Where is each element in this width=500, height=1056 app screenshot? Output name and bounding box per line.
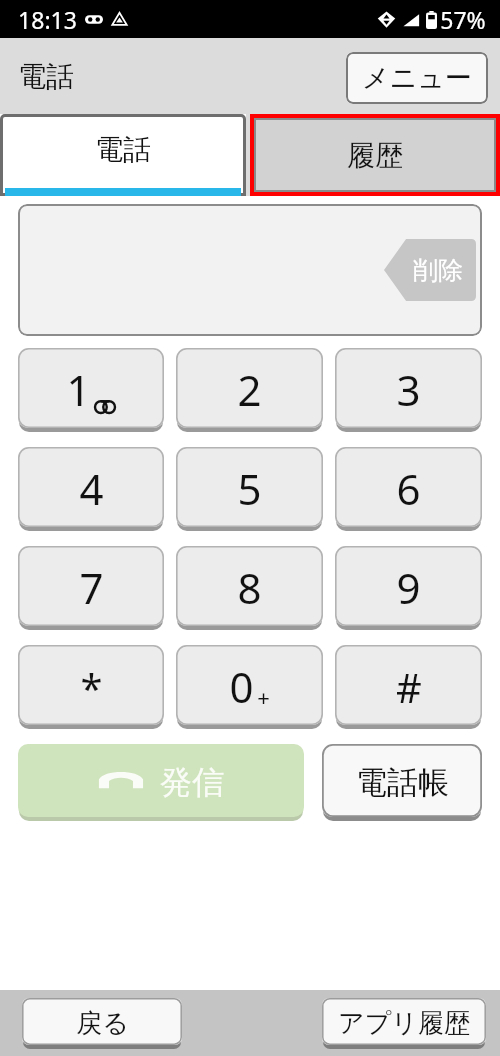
button[interactable]: 4 xyxy=(18,447,164,530)
button[interactable]: 電話 xyxy=(0,114,246,196)
button[interactable]: 1 xyxy=(18,348,164,431)
button[interactable]: 電話帳 xyxy=(322,744,482,820)
button[interactable]: # xyxy=(335,645,482,728)
staticText: 6 xyxy=(396,460,421,517)
staticText: 5 xyxy=(237,460,262,517)
button[interactable]: 8 xyxy=(176,546,323,629)
button[interactable]: 履歴 xyxy=(254,118,496,192)
button[interactable]: * xyxy=(18,645,164,728)
staticText: メニュー xyxy=(362,61,472,95)
button[interactable]: アプリ履歴 xyxy=(322,998,486,1048)
staticText: + xyxy=(257,682,270,712)
staticText: * xyxy=(80,660,103,714)
button[interactable]: 削除 xyxy=(384,239,476,301)
button[interactable]: 2 xyxy=(176,348,323,431)
staticText: 2 xyxy=(237,361,262,418)
button[interactable]: 7 xyxy=(18,546,164,629)
staticText: 電話帳 xyxy=(356,763,449,802)
button[interactable]: 戻る xyxy=(22,998,182,1048)
staticText: 削除 xyxy=(413,255,463,286)
staticText: 発信 xyxy=(160,762,224,802)
staticText: 1 xyxy=(66,361,91,418)
staticText: 18:13 xyxy=(18,4,77,35)
staticText: 3 xyxy=(396,361,421,418)
staticText: 戻る xyxy=(76,1007,129,1040)
button[interactable]: 9 xyxy=(335,546,482,629)
staticText: 0 xyxy=(229,658,254,715)
button[interactable]: 発信 xyxy=(18,744,304,820)
staticText: 57% xyxy=(440,4,486,35)
staticText: アプリ履歴 xyxy=(338,1007,470,1040)
staticText: 電話 xyxy=(18,59,74,94)
button[interactable]: 3 xyxy=(335,348,482,431)
staticText: 7 xyxy=(79,559,104,616)
staticText: 8 xyxy=(237,559,262,616)
button[interactable]: 0 xyxy=(176,645,323,728)
staticText: 電話 xyxy=(95,132,151,167)
button[interactable]: メニュー xyxy=(346,52,488,104)
staticText: 9 xyxy=(396,559,421,616)
button[interactable]: 5 xyxy=(176,447,323,530)
button[interactable]: 6 xyxy=(335,447,482,530)
staticText: 4 xyxy=(79,460,104,517)
staticText: # xyxy=(396,660,422,714)
staticText: 履歴 xyxy=(347,138,403,173)
